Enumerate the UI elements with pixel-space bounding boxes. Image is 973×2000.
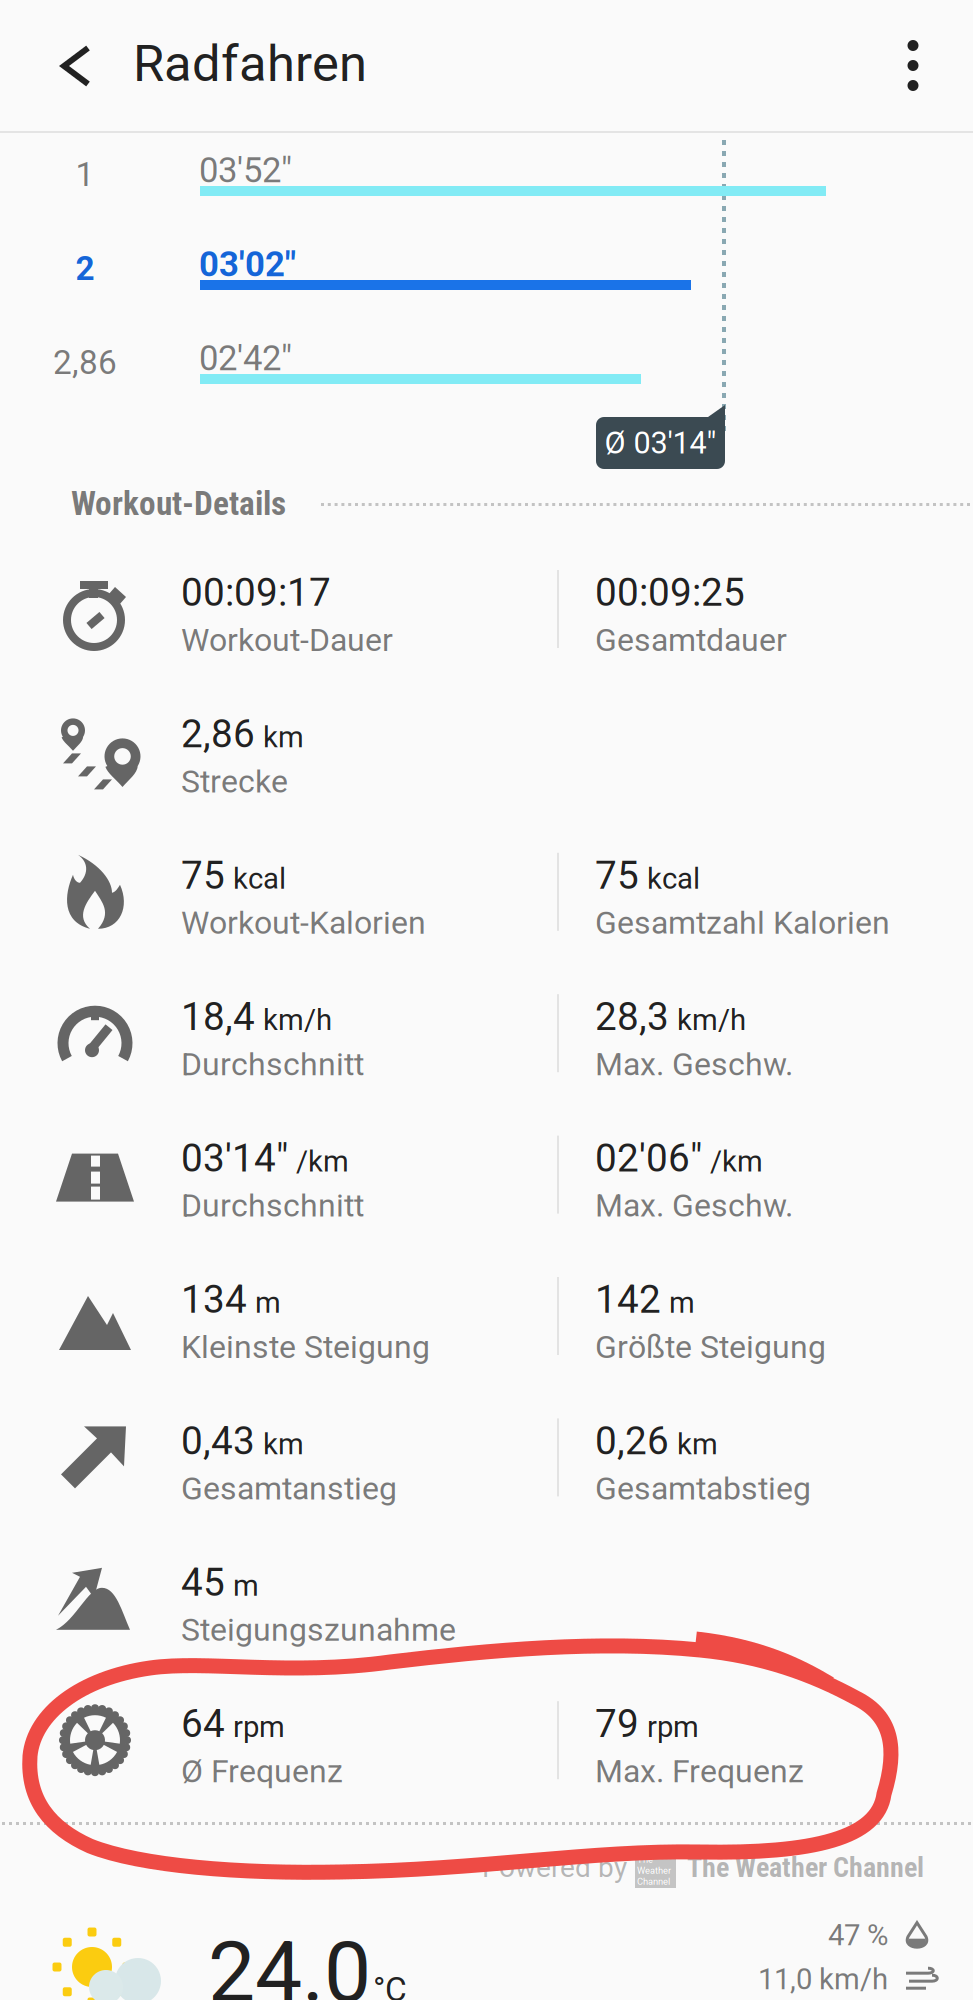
staticText: Gesamtdauer (595, 621, 787, 659)
staticText: rpm (647, 1710, 699, 1744)
staticText: Gesamtzahl Kalorien (595, 904, 890, 942)
staticText: kcal (233, 861, 286, 896)
staticText: Max. Geschw. (595, 1045, 793, 1083)
staticText: 79 (595, 1701, 639, 1746)
staticText: 02'06" (595, 1136, 702, 1181)
button[interactable]: Back (0, 0, 140, 133)
staticText: 11,0 km/h (758, 1962, 888, 1996)
staticText: Ø Frequenz (181, 1752, 343, 1790)
staticText: Radfahren (133, 34, 367, 93)
staticText: Channel (637, 1876, 670, 1887)
staticText: The Weather Channel (687, 1851, 924, 1884)
staticText: 134 (181, 1277, 247, 1322)
staticText: Workout-Dauer (181, 621, 393, 659)
staticText: °C (373, 1970, 407, 2000)
staticText: Gesamtanstieg (181, 1470, 397, 1507)
staticText: km (263, 720, 304, 754)
staticText: Ø 03'14" (604, 425, 716, 461)
staticText: 75 (595, 853, 639, 898)
staticText: 2 (75, 249, 94, 288)
staticText: Kleinste Steigung (181, 1328, 430, 1366)
staticText: 02'42" (199, 338, 292, 379)
staticText: Max. Frequenz (595, 1752, 804, 1790)
staticText: 03'14" (181, 1136, 288, 1181)
staticText: Powered by (482, 1851, 627, 1884)
staticText: Strecke (181, 763, 288, 800)
staticText: Steigungszunahme (181, 1611, 456, 1649)
staticText: km (677, 1427, 718, 1461)
staticText: /km (710, 1144, 763, 1179)
staticText: Gesamtabstieg (595, 1470, 811, 1507)
staticText: 00:09:25 (595, 570, 745, 615)
staticText: m (233, 1568, 259, 1603)
staticText: 2,86 (53, 343, 117, 382)
staticText: 47 % (828, 1918, 888, 1952)
staticText: Workout-Details (71, 484, 286, 523)
staticText: Max. Geschw. (595, 1187, 793, 1224)
staticText: Weather (637, 1865, 671, 1876)
staticText: 28,3 (595, 994, 669, 1039)
staticText: 64 (181, 1701, 225, 1746)
staticText: rpm (233, 1710, 285, 1744)
staticText: 45 (181, 1560, 225, 1605)
staticText: 1 (75, 155, 94, 194)
staticText: /km (296, 1144, 349, 1179)
staticText: Durchschnitt (181, 1187, 364, 1224)
staticText: m (255, 1286, 281, 1320)
staticText: m (669, 1286, 695, 1320)
staticText: 75 (181, 853, 225, 898)
staticText: 142 (595, 1277, 661, 1322)
staticText: 0,43 (181, 1418, 255, 1464)
button[interactable]: More options (853, 0, 973, 131)
staticText: The (637, 1854, 653, 1865)
staticText: 03'02" (199, 244, 296, 285)
staticText: 03'52" (199, 150, 292, 191)
staticText: kcal (647, 861, 700, 896)
staticText: 18,4 (181, 994, 255, 1039)
staticText: 2,86 (181, 711, 255, 757)
staticText: Größte Steigung (595, 1328, 826, 1366)
staticText: 00:09:17 (181, 570, 331, 615)
staticText: km (263, 1427, 304, 1461)
staticText: Durchschnitt (181, 1045, 364, 1083)
staticText: 0,26 (595, 1418, 669, 1464)
staticText: Workout-Kalorien (181, 904, 426, 942)
staticText: km/h (263, 1003, 332, 1037)
staticText: 24.0 (208, 1923, 371, 2000)
staticText: km/h (677, 1003, 746, 1037)
